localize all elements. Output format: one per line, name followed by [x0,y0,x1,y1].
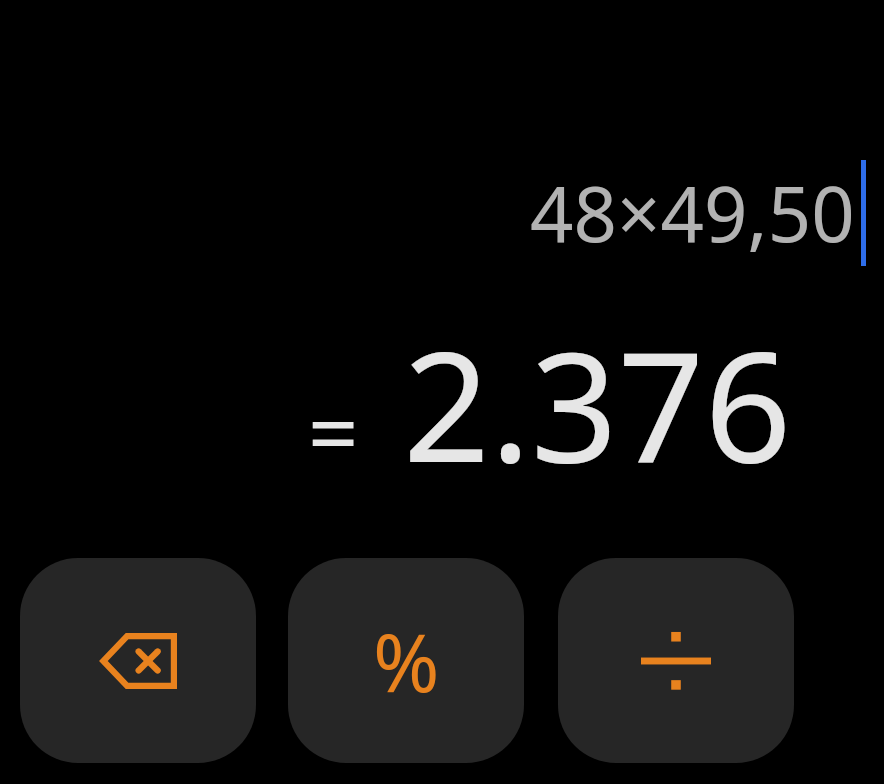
button[interactable]: Percent [288,558,524,763]
staticText: % [373,606,440,715]
button[interactable]: Divide [558,558,794,763]
staticText: = [308,371,359,491]
staticText: 48×49,50 [530,161,855,265]
button[interactable]: Backspace [20,558,256,763]
staticText: 2.376 [403,300,792,507]
